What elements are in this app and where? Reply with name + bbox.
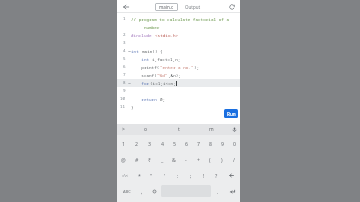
button[interactable]: 6 [180, 135, 192, 151]
staticText: 1 [123, 16, 126, 22]
button[interactable]: ABC [117, 183, 136, 199]
button[interactable]: 5 [168, 135, 180, 151]
staticText: (i=1;i<=n; [150, 80, 176, 86]
button[interactable]: Backspace [223, 167, 240, 183]
staticText: / [233, 156, 235, 163]
staticText: 5 [123, 56, 126, 62]
button[interactable]: _ [156, 151, 168, 167]
button[interactable]: : [171, 167, 184, 183]
staticText: number [131, 24, 160, 30]
staticText: main.c [159, 4, 174, 10]
button[interactable]: . [212, 183, 224, 199]
staticText: =\< [122, 173, 129, 178]
button[interactable]: & [168, 151, 180, 167]
staticText: @ [121, 156, 126, 163]
staticText: } [131, 104, 134, 110]
button[interactable]: Emoji [148, 183, 160, 199]
button[interactable]: ? [210, 167, 223, 183]
staticText: # [135, 156, 139, 163]
staticText: 1 [122, 140, 125, 147]
button[interactable]: t [162, 124, 195, 135]
button[interactable]: 8 [204, 135, 216, 151]
staticText: & [172, 156, 176, 163]
staticText: : [177, 172, 179, 179]
staticText: 0 [233, 140, 236, 147]
staticText: 4 [123, 48, 126, 54]
staticText: 7 [197, 140, 200, 147]
staticText: 6 [185, 140, 188, 147]
button[interactable]: ) [216, 151, 228, 167]
button[interactable]: @ [117, 151, 130, 167]
staticText: ? [215, 172, 218, 179]
button[interactable]: 4 [156, 135, 168, 151]
button[interactable]: Voice input [228, 124, 240, 135]
staticText: ,&n); [168, 72, 181, 78]
staticText: printf( [131, 64, 160, 70]
staticText: ₹ [148, 156, 151, 163]
button[interactable]: Refresh [226, 1, 237, 12]
button[interactable]: + [192, 151, 204, 167]
staticText: . [217, 188, 219, 195]
staticText: 3 [123, 40, 126, 46]
button[interactable]: ! [197, 167, 210, 183]
staticText: 8 [123, 80, 126, 86]
staticText: int [131, 48, 142, 54]
staticText: _ [161, 156, 164, 163]
button[interactable]: m [195, 124, 228, 135]
staticText: ' [164, 172, 166, 179]
button[interactable]: More suggestions [117, 124, 129, 135]
button[interactable]: 7 [192, 135, 204, 151]
button[interactable]: =\< [117, 167, 133, 183]
staticText: + [197, 156, 200, 163]
staticText: for [131, 80, 150, 86]
staticText: 3 [148, 140, 151, 147]
staticText: 0; [160, 96, 166, 102]
button[interactable]: Output [185, 3, 201, 11]
button[interactable]: Back [120, 1, 131, 12]
staticText: Run [227, 111, 236, 117]
staticText: <stdio.h> [155, 32, 179, 38]
staticText: i,fact=1,n; [152, 56, 181, 62]
button[interactable]: / [228, 151, 240, 167]
button[interactable]: ₹ [143, 151, 156, 167]
button[interactable]: , [136, 183, 148, 199]
button[interactable]: # [130, 151, 143, 167]
staticText: Output [185, 4, 201, 10]
button[interactable]: 3 [143, 135, 156, 151]
staticText: 11 [120, 104, 126, 110]
button[interactable]: Enter [224, 183, 240, 199]
staticText: // program to calculate factorial of a [131, 16, 229, 22]
staticText: 2 [135, 140, 138, 147]
staticText: ; [190, 172, 192, 179]
staticText: m [209, 126, 214, 133]
staticText: ! [203, 172, 205, 179]
button[interactable]: ( [204, 151, 216, 167]
staticText: 5 [173, 140, 176, 147]
button[interactable]: ; [184, 167, 197, 183]
staticText: int [131, 56, 152, 62]
button[interactable]: o [129, 124, 162, 135]
button[interactable]: ' [158, 167, 171, 183]
staticText: 7 [123, 72, 126, 78]
staticText: "enter a no." [160, 64, 194, 70]
button[interactable]: - [180, 151, 192, 167]
staticText: ABC [123, 189, 131, 194]
staticText: "%d" [157, 72, 168, 78]
button[interactable]: " [145, 167, 158, 183]
staticText: ); [194, 64, 200, 70]
button[interactable]: 9 [216, 135, 228, 151]
staticText: return [131, 96, 160, 102]
button[interactable]: main.c [159, 3, 174, 11]
staticText: ( [209, 156, 211, 163]
staticText: 4 [161, 140, 164, 147]
staticText: , [141, 188, 143, 195]
button[interactable]: 0 [228, 135, 240, 151]
button[interactable]: 1 [117, 135, 130, 151]
button[interactable]: * [133, 167, 145, 183]
staticText: " [150, 172, 153, 179]
staticText: #include [131, 32, 155, 38]
button[interactable]: 2 [130, 135, 143, 151]
button[interactable]: Run [224, 109, 238, 118]
staticText: 9 [221, 140, 224, 147]
